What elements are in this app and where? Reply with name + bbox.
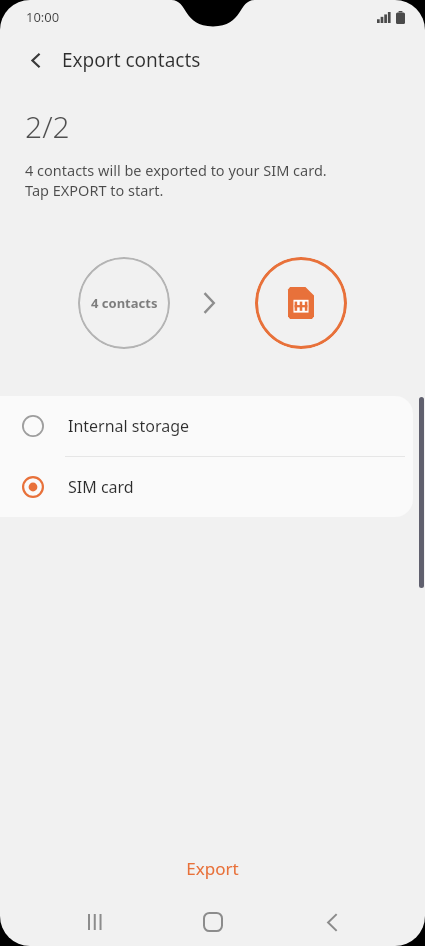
button[interactable]: Export [0, 845, 425, 891]
button[interactable]: Back [18, 42, 54, 78]
button[interactable]: Internal storage [0, 396, 413, 456]
button[interactable]: Back [311, 901, 353, 943]
staticText: Export [186, 857, 239, 880]
button[interactable]: Home [191, 900, 235, 944]
staticText: Internal storage [68, 415, 190, 437]
staticText: Export contacts [62, 47, 201, 73]
staticText: SIM card [68, 476, 134, 498]
staticText: 4 contacts [91, 294, 158, 312]
staticText: 2/2 [25, 106, 70, 147]
staticText: 10:00 [26, 8, 60, 26]
staticText: 4 contacts will be exported to your SIM … [25, 160, 327, 180]
button[interactable]: SIM card [0, 457, 413, 517]
button[interactable]: Recents [74, 901, 116, 943]
staticText: Tap EXPORT to start. [25, 180, 164, 200]
